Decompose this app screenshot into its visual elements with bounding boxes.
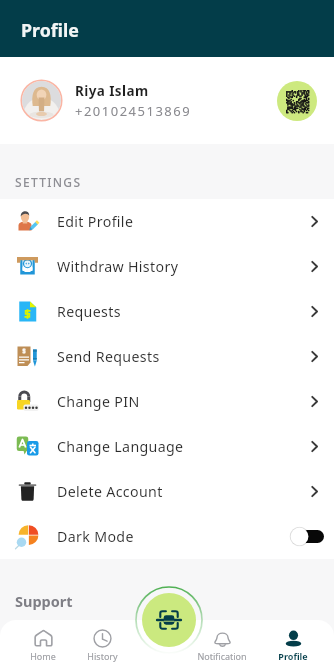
button[interactable]: Dark mode toggle: [289, 527, 324, 546]
button[interactable]: Change Language: [0, 424, 334, 469]
button[interactable]: Home: [10, 620, 76, 667]
staticText: Withdraw History: [57, 257, 179, 276]
button[interactable]: Dark Mode: [0, 514, 334, 559]
button[interactable]: Profile: [260, 620, 326, 667]
staticText: Change PIN: [57, 392, 140, 411]
button[interactable]: Requests: [0, 289, 334, 334]
button[interactable]: Show QR code: [277, 81, 317, 121]
staticText: Riya Islam: [75, 82, 149, 100]
staticText: Change Language: [57, 437, 184, 456]
button[interactable]: Edit Profile: [0, 199, 334, 244]
staticText: Profile: [21, 18, 79, 42]
staticText: Edit Profile: [57, 212, 134, 231]
staticText: Delete Account: [57, 482, 163, 501]
button[interactable]: Withdraw History: [0, 244, 334, 289]
staticText: Notification: [197, 650, 247, 662]
staticText: Send Requests: [57, 347, 160, 366]
button[interactable]: Send Requests: [0, 334, 334, 379]
staticText: Dark Mode: [57, 527, 134, 546]
button[interactable]: Change PIN: [0, 379, 334, 424]
button[interactable]: Delete Account: [0, 469, 334, 514]
staticText: +201024513869: [75, 102, 192, 120]
button[interactable]: Notification: [189, 620, 255, 667]
button[interactable]: Scan QR: [142, 593, 196, 647]
button[interactable]: History: [69, 620, 135, 667]
staticText: Support: [15, 591, 73, 611]
staticText: Requests: [57, 302, 121, 321]
staticText: History: [87, 650, 118, 662]
staticText: Home: [30, 650, 56, 662]
staticText: Profile: [278, 650, 308, 662]
staticText: SETTINGS: [15, 174, 82, 190]
